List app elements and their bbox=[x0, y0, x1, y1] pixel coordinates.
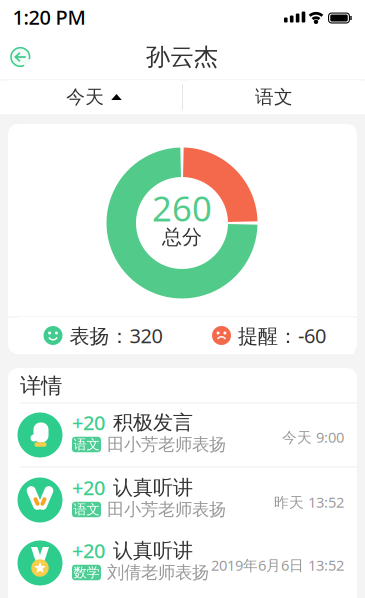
staticText: 孙云杰 bbox=[146, 42, 218, 72]
staticText: 语文 bbox=[73, 436, 99, 453]
button[interactable]: 今天 bbox=[0, 0, 365, 598]
staticText: 语文 bbox=[73, 501, 99, 518]
button[interactable]: +20 bbox=[8, 532, 357, 594]
staticText: 认真听讲 bbox=[113, 475, 193, 500]
button[interactable]: 表扬：320 bbox=[0, 0, 365, 598]
staticText: 260 bbox=[152, 185, 212, 231]
staticText: 今天 9:00 bbox=[282, 427, 344, 447]
staticText: 今天 bbox=[66, 85, 104, 108]
button[interactable]: +20 bbox=[8, 404, 357, 466]
button[interactable]: +20 bbox=[8, 469, 357, 531]
staticText: 认真听讲 bbox=[113, 538, 193, 563]
staticText: 详情 bbox=[20, 373, 62, 399]
staticText: 数学 bbox=[73, 564, 99, 581]
staticText: 田小芳老师表扬 bbox=[107, 499, 226, 520]
button[interactable]: 提醒：-60 bbox=[0, 0, 365, 598]
staticText: +20 bbox=[72, 409, 105, 436]
staticText: +20 bbox=[72, 474, 105, 501]
staticText: 田小芳老师表扬 bbox=[107, 434, 226, 455]
staticText: 昨天 13:52 bbox=[274, 492, 344, 512]
button[interactable]: Back bbox=[0, 37, 40, 77]
staticText: 语文 bbox=[255, 85, 293, 108]
staticText: 积极发言 bbox=[113, 410, 193, 435]
staticText: 1:20 PM bbox=[12, 4, 85, 30]
staticText: 总分 bbox=[162, 225, 202, 249]
staticText: 表扬：320 bbox=[69, 322, 162, 349]
staticText: 提醒：-60 bbox=[238, 322, 326, 349]
staticText: +20 bbox=[72, 537, 105, 564]
button[interactable]: 语文 bbox=[0, 0, 365, 598]
staticText: 2019年6月6日 13:52 bbox=[211, 555, 344, 575]
staticText: 刘倩老师表扬 bbox=[107, 562, 209, 583]
